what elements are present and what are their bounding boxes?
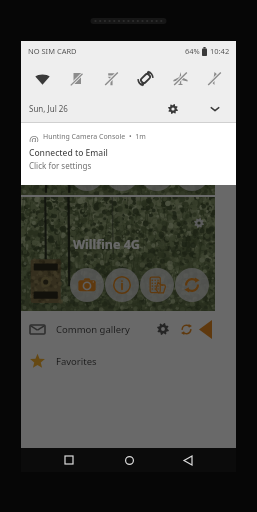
staticText: 10:42 bbox=[210, 46, 230, 56]
button[interactable]: Refresh bbox=[176, 319, 196, 339]
button[interactable]: Back bbox=[176, 448, 200, 472]
button[interactable]: Common gallery bbox=[21, 313, 215, 345]
button[interactable]: Settings bbox=[164, 100, 182, 118]
button[interactable]: Info bbox=[105, 268, 139, 302]
staticText: Sun, Jul 26 bbox=[29, 103, 68, 114]
button[interactable]: Gallery settings bbox=[153, 319, 173, 339]
button[interactable]: Sync bbox=[175, 268, 209, 302]
button[interactable]: Commands bbox=[140, 268, 174, 302]
staticText: @ bbox=[29, 132, 39, 142]
staticText: Hunting Camera Console • 1m bbox=[43, 132, 146, 142]
button[interactable]: Expand bbox=[206, 100, 224, 118]
button[interactable]: Hotspot off bbox=[95, 62, 128, 95]
staticText: Click for settings bbox=[29, 160, 92, 171]
button[interactable]: Auto rotate bbox=[129, 62, 162, 95]
button[interactable]: Wi-Fi bbox=[26, 62, 59, 95]
button[interactable]: Photos bbox=[70, 268, 104, 302]
staticText: 64% bbox=[185, 46, 200, 56]
staticText: Common gallery bbox=[56, 323, 130, 336]
button[interactable]: Home bbox=[117, 448, 141, 472]
button[interactable]: Collapse bbox=[199, 318, 215, 340]
button[interactable]: Bluetooth off bbox=[198, 62, 231, 95]
button[interactable]: @ bbox=[21, 123, 236, 185]
button[interactable]: Recents bbox=[57, 448, 81, 472]
button[interactable]: Camera settings bbox=[21, 197, 215, 311]
staticText: Connected to Email bbox=[29, 147, 108, 159]
staticText: Favorites bbox=[56, 355, 97, 368]
staticText: Willfine 4G bbox=[73, 236, 140, 253]
staticText: NO SIM CARD bbox=[28, 46, 77, 56]
button[interactable]: Mobile data off bbox=[60, 62, 93, 95]
button[interactable]: Airplane mode off bbox=[164, 62, 197, 95]
button[interactable]: Camera settings bbox=[189, 213, 209, 233]
button[interactable]: Favorites bbox=[21, 345, 215, 377]
